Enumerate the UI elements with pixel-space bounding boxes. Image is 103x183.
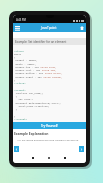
staticText: <style> #div1 { height : 200px; [14, 49, 38, 61]
button[interactable]: Next topic [79, 146, 84, 152]
staticText: border-right : 4px solid orange; } </sty… [14, 75, 63, 87]
staticText: <script> function fun_name() { var elem … [14, 88, 44, 100]
button[interactable]: Open navigation menu [13, 23, 22, 32]
button[interactable]: Recent apps [60, 153, 70, 163]
staticText: Example: Set identifier for an element [15, 40, 67, 44]
staticText: Try Yourself [41, 124, 58, 128]
button[interactable]: Try Yourself [13, 122, 86, 129]
staticText: document.getElementById("div1") alert(el… [14, 101, 61, 113]
staticText: • In the above example we have created a… [17, 138, 79, 141]
button[interactable]: Home [77, 23, 86, 32]
button[interactable]: Previous topic [14, 146, 19, 152]
staticText: width : 250px; border-top : 3px solid bl… [14, 62, 63, 74]
staticText: Example Explanation [14, 131, 49, 135]
staticText: } </script> [14, 114, 28, 120]
staticText: JavaTpoint [41, 26, 57, 30]
button[interactable]: Home [44, 153, 54, 163]
button[interactable]: Back [28, 153, 38, 163]
staticText: 4:45 PM [16, 18, 26, 22]
